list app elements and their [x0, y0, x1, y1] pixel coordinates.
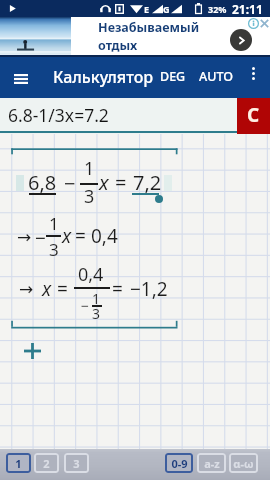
staticText: a-z — [204, 456, 220, 471]
staticText: x — [42, 276, 52, 302]
staticText: 21:11 — [232, 1, 263, 17]
staticText: 1 — [92, 289, 101, 308]
staticText: = — [75, 223, 86, 249]
button[interactable]: 1 — [6, 453, 31, 473]
staticText: 3 — [92, 304, 101, 323]
staticText: x — [99, 169, 109, 196]
staticText: Незабываемый — [98, 19, 200, 36]
button[interactable]: Open advertisement — [230, 29, 252, 51]
staticText: = — [112, 276, 123, 302]
staticText: − — [35, 225, 46, 251]
staticText: AUTO — [199, 68, 233, 85]
button[interactable]: 0-9 — [165, 453, 193, 473]
staticText: −1,2 — [130, 276, 168, 302]
staticText: Калькулятор — [53, 66, 154, 88]
staticText: = — [57, 276, 68, 302]
staticText: отдых — [98, 37, 138, 54]
staticText: 0-9 — [171, 456, 188, 471]
button[interactable]: DEG — [160, 68, 186, 85]
staticText: → — [19, 279, 34, 299]
staticText: 7,2 — [133, 169, 162, 196]
staticText: 1 — [49, 212, 59, 235]
staticText: DEG — [160, 68, 186, 85]
staticText: 32% — [208, 3, 227, 15]
button[interactable]: 2 — [34, 453, 59, 473]
staticText: = — [115, 169, 127, 196]
staticText: 2 — [43, 456, 50, 471]
staticText: 0,4 — [78, 262, 104, 287]
staticText: 3 — [49, 238, 59, 261]
button[interactable]: Add new calculation — [21, 340, 43, 362]
staticText: 3 — [84, 184, 95, 209]
button[interactable]: Ad information — [248, 18, 259, 29]
staticText: 6.8-1/3x=7.2 — [8, 103, 109, 127]
staticText: C — [247, 102, 260, 128]
staticText: 6,8 — [28, 169, 57, 196]
button[interactable]: More options — [243, 63, 264, 84]
staticText: 3 — [73, 456, 80, 471]
staticText: 0,4 — [91, 223, 118, 249]
button[interactable]: AUTO — [199, 68, 233, 85]
button[interactable]: C — [237, 98, 270, 134]
button[interactable]: α-ω — [229, 453, 258, 473]
staticText: G — [163, 3, 170, 15]
button[interactable]: a-z — [197, 453, 226, 473]
staticText: 1 — [84, 156, 95, 181]
staticText: − — [64, 170, 76, 197]
button[interactable]: Close ad — [259, 18, 270, 29]
staticText: E — [144, 3, 150, 15]
staticText: → — [17, 227, 32, 247]
staticText: − — [81, 296, 90, 315]
button[interactable]: 3 — [64, 453, 89, 473]
staticText: 1 — [15, 456, 22, 471]
staticText: x — [62, 223, 72, 249]
button[interactable]: Open navigation menu — [7, 65, 34, 92]
staticText: α-ω — [233, 456, 254, 471]
